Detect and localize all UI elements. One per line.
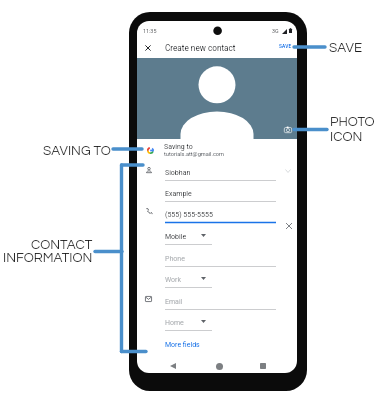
staticText: Work xyxy=(165,276,182,284)
button[interactable]: Siobhan xyxy=(165,166,276,180)
button[interactable]: Clear xyxy=(283,220,294,231)
button[interactable]: Close xyxy=(138,38,158,57)
staticText: PHOTO xyxy=(330,115,375,129)
staticText: Mobile xyxy=(165,233,187,241)
button[interactable]: Home xyxy=(165,316,212,330)
button[interactable]: Add photo xyxy=(284,126,292,133)
staticText: SAVE xyxy=(279,44,292,50)
button[interactable]: Example xyxy=(165,187,276,201)
staticText: 3G xyxy=(272,28,279,34)
button[interactable]: Saving to xyxy=(137,139,297,161)
button[interactable]: Back xyxy=(166,359,180,373)
staticText: Siobhan xyxy=(165,169,191,177)
button[interactable]: Email xyxy=(165,295,276,309)
staticText: SAVING TO xyxy=(43,144,111,158)
staticText: tutorials.att@gmail.com xyxy=(164,151,224,158)
button[interactable]: Mobile xyxy=(165,230,212,244)
staticText: SAVE xyxy=(329,41,363,55)
button[interactable]: Home xyxy=(212,359,226,373)
button[interactable]: SAVE xyxy=(278,40,293,54)
staticText: Phone xyxy=(165,255,185,263)
staticText: Saving to xyxy=(164,143,193,151)
staticText: Create new contact xyxy=(165,43,236,53)
staticText: 11:35 xyxy=(143,28,157,34)
button[interactable]: Work xyxy=(165,273,212,287)
staticText: (555) 555-5555 xyxy=(165,211,213,219)
staticText: CONTACT xyxy=(31,238,93,252)
button[interactable]: Recent apps xyxy=(256,359,270,373)
staticText: Example xyxy=(165,190,192,198)
staticText: More fields xyxy=(165,341,200,349)
staticText: Email xyxy=(165,298,183,306)
staticText: Home xyxy=(165,319,184,327)
button[interactable]: More fields xyxy=(165,339,205,351)
staticText: INFORMATION xyxy=(3,251,93,265)
staticText: ICON xyxy=(330,130,363,144)
button[interactable]: (555) 555-5555 xyxy=(165,208,276,222)
button[interactable]: Phone xyxy=(165,252,276,266)
